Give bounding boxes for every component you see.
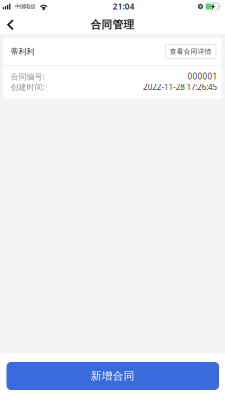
staticText: 创建时间:: [10, 82, 44, 92]
staticText: 查看合同详情: [170, 47, 212, 56]
button[interactable]: 查看合同详情: [165, 44, 216, 59]
button[interactable]: Back: [0, 14, 23, 35]
staticText: 合同管理: [90, 18, 134, 31]
staticText: 新增合同: [91, 369, 135, 382]
staticText: 蒂利利: [10, 47, 34, 56]
staticText: 中国电信: [15, 3, 35, 10]
staticText: 000001: [187, 71, 217, 82]
staticText: 21:04: [113, 1, 135, 12]
staticText: 合同编号:: [10, 71, 44, 82]
button[interactable]: 新增合同: [6, 362, 219, 390]
staticText: 2022-11-28 17:26:45: [143, 82, 217, 92]
